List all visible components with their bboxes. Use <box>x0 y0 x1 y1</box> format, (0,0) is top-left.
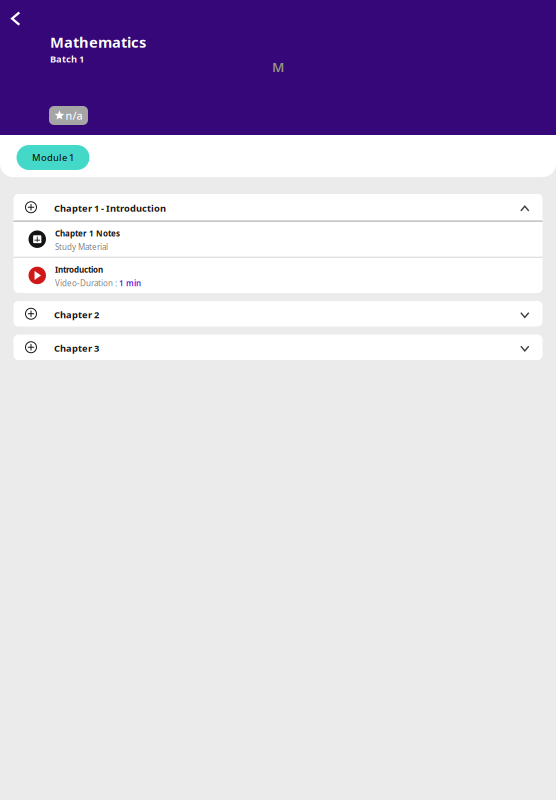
button[interactable]: Chapter 1 - Introduction <box>13 194 542 220</box>
button[interactable]: Module 1 <box>16 145 89 170</box>
button[interactable]: Back <box>0 5 40 32</box>
button[interactable]: Introduction <box>13 258 542 293</box>
staticText: Chapter 3 <box>54 342 99 354</box>
staticText: Chapter 2 <box>54 309 99 321</box>
staticText: Video-Duration : <box>55 278 119 288</box>
staticText: n/a <box>65 108 82 123</box>
button[interactable]: Chapter 1 Notes <box>13 222 542 257</box>
staticText: Chapter 1 - Introduction <box>54 202 166 214</box>
staticText: M <box>272 58 284 76</box>
button[interactable]: Chapter 3 <box>13 334 542 360</box>
staticText: Batch 1 <box>50 53 84 65</box>
staticText: Module 1 <box>32 151 74 164</box>
staticText: Chapter 1 Notes <box>55 228 120 239</box>
staticText: 1 min <box>119 278 141 288</box>
staticText: Mathematics <box>50 32 146 52</box>
staticText: Introduction <box>55 264 103 275</box>
staticText: Study Material <box>55 242 108 252</box>
button[interactable]: Chapter 2 <box>13 301 542 326</box>
